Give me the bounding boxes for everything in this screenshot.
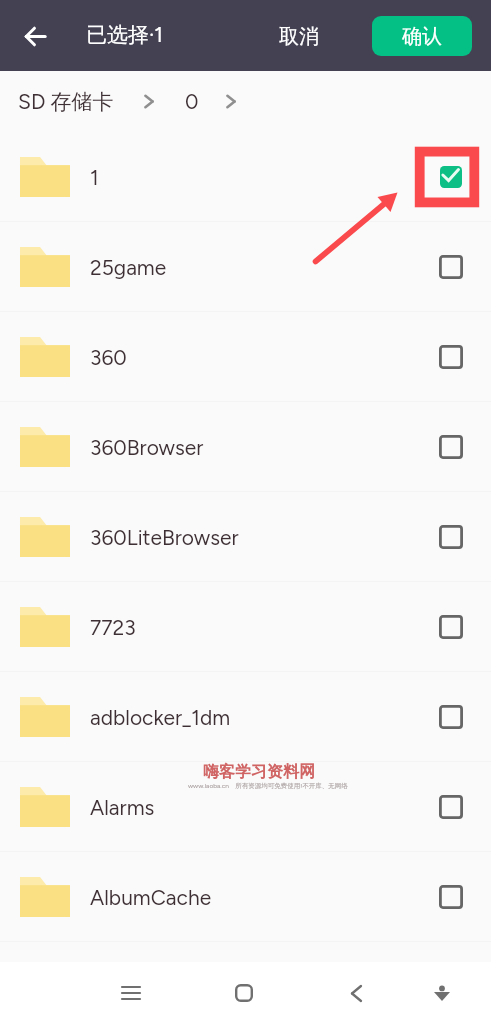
button[interactable]: Alarms <box>0 762 491 852</box>
staticText: SD 存储卡 <box>18 89 114 115</box>
button[interactable]: 360LiteBrowser <box>0 492 491 582</box>
button[interactable]: Back <box>330 967 382 1019</box>
button[interactable]: Home <box>218 967 270 1019</box>
staticText: 360 <box>90 345 127 370</box>
button[interactable]: 360Browser <box>0 402 491 492</box>
staticText: Alarms <box>90 795 155 820</box>
button[interactable]: Select adblocker_1dm <box>425 691 477 743</box>
staticText: 确认 <box>402 24 442 49</box>
button[interactable]: Menu <box>105 967 157 1019</box>
button[interactable]: Select Alarms <box>425 781 477 833</box>
button[interactable]: 0 <box>185 89 199 114</box>
button[interactable]: Back <box>13 14 58 59</box>
staticText: 7723 <box>90 615 136 640</box>
staticText: 已选择·1 <box>86 22 164 48</box>
staticText: 嗨客学习资料网 <box>203 762 315 782</box>
button[interactable]: Select 25game <box>425 241 477 293</box>
staticText: 0 <box>185 89 199 114</box>
button[interactable]: adblocker_1dm <box>0 672 491 762</box>
staticText: 1 <box>90 165 99 190</box>
staticText: adblocker_1dm <box>90 705 231 730</box>
button[interactable]: 360 <box>0 312 491 402</box>
staticText: 25game <box>90 255 167 280</box>
staticText: www.laoba.cn 所有资源均可免费使用!不开库、无网络 <box>188 782 348 790</box>
button[interactable]: Select 360 <box>425 331 477 383</box>
button[interactable]: Select AlbumCache <box>425 871 477 923</box>
staticText: AlbumCache <box>90 885 212 910</box>
button[interactable]: 7723 <box>0 582 491 672</box>
button[interactable]: 1 <box>0 132 491 222</box>
button[interactable]: 确认 <box>372 16 472 56</box>
button[interactable]: Hide navigation bar <box>416 967 468 1019</box>
button[interactable]: Select 7723 <box>425 601 477 653</box>
button[interactable]: Select 360LiteBrowser <box>425 511 477 563</box>
button[interactable]: AlbumCache <box>0 852 491 942</box>
button[interactable]: Select 1 <box>425 151 477 203</box>
button[interactable]: 25game <box>0 222 491 312</box>
staticText: 360LiteBrowser <box>90 525 239 550</box>
button[interactable]: Select 360Browser <box>425 421 477 473</box>
button[interactable]: 取消 <box>268 16 330 57</box>
staticText: 取消 <box>279 24 319 49</box>
staticText: 360Browser <box>90 435 204 460</box>
button[interactable]: SD 存储卡 <box>18 89 114 115</box>
